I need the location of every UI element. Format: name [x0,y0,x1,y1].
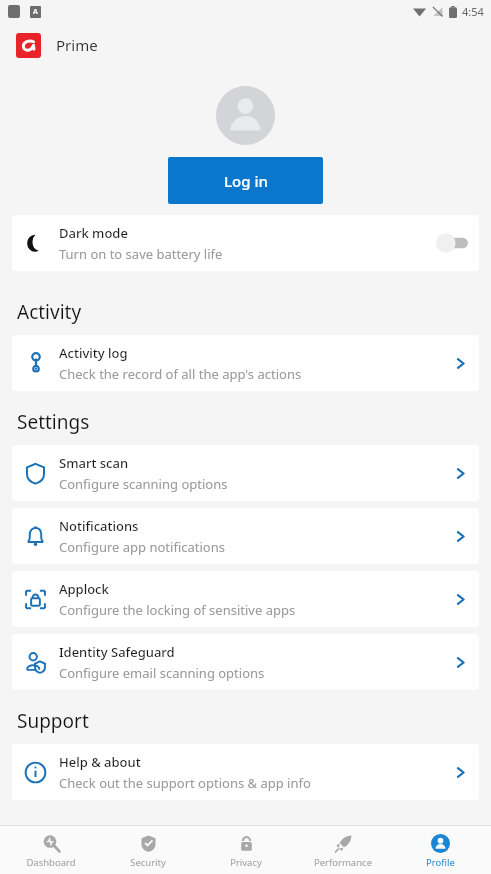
staticText: Applock [59,580,109,598]
staticText: Security [130,856,166,869]
button[interactable]: Help & about [12,744,479,800]
button[interactable]: Notifications [12,508,479,564]
button[interactable]: Dashboard [5,832,97,869]
staticText: Log in [224,171,268,191]
staticText: Privacy [230,856,262,869]
staticText: Configure the locking of sensitive apps [59,601,296,619]
staticText: Settings [17,409,90,435]
button[interactable]: Profile [394,832,486,869]
button[interactable]: Security [102,832,194,869]
staticText: Turn on to save battery life [59,245,223,263]
button[interactable]: Dark mode toggle [427,225,479,261]
staticText: Notifications [59,517,139,535]
button[interactable]: Log in [168,157,323,204]
button[interactable]: Activity log [12,335,479,391]
staticText: Activity [17,299,82,325]
staticText: Check out the support options & app info [59,774,311,792]
staticText: Support [17,708,89,734]
staticText: Configure email scanning options [59,664,265,682]
staticText: Help & about [59,753,141,771]
button[interactable]: Applock [12,571,479,627]
staticText: Smart scan [59,454,129,472]
staticText: Configure app notifications [59,538,225,556]
button[interactable]: Performance [297,832,389,869]
staticText: Activity log [59,344,128,362]
button[interactable]: Identity Safeguard [12,634,479,690]
staticText: Check the record of all the app's action… [59,365,302,383]
button[interactable]: Smart scan [12,445,479,501]
button[interactable]: Dark mode [12,215,479,271]
button[interactable]: Privacy [200,832,292,869]
staticText: Dark mode [59,224,128,242]
staticText: Profile [426,856,455,869]
staticText: A [33,7,38,17]
staticText: Dashboard [26,856,76,869]
staticText: Performance [314,856,372,869]
staticText: Prime [56,35,98,55]
staticText: Configure scanning options [59,475,228,493]
staticText: 4:54 [462,4,484,19]
staticText: Identity Safeguard [59,643,175,661]
